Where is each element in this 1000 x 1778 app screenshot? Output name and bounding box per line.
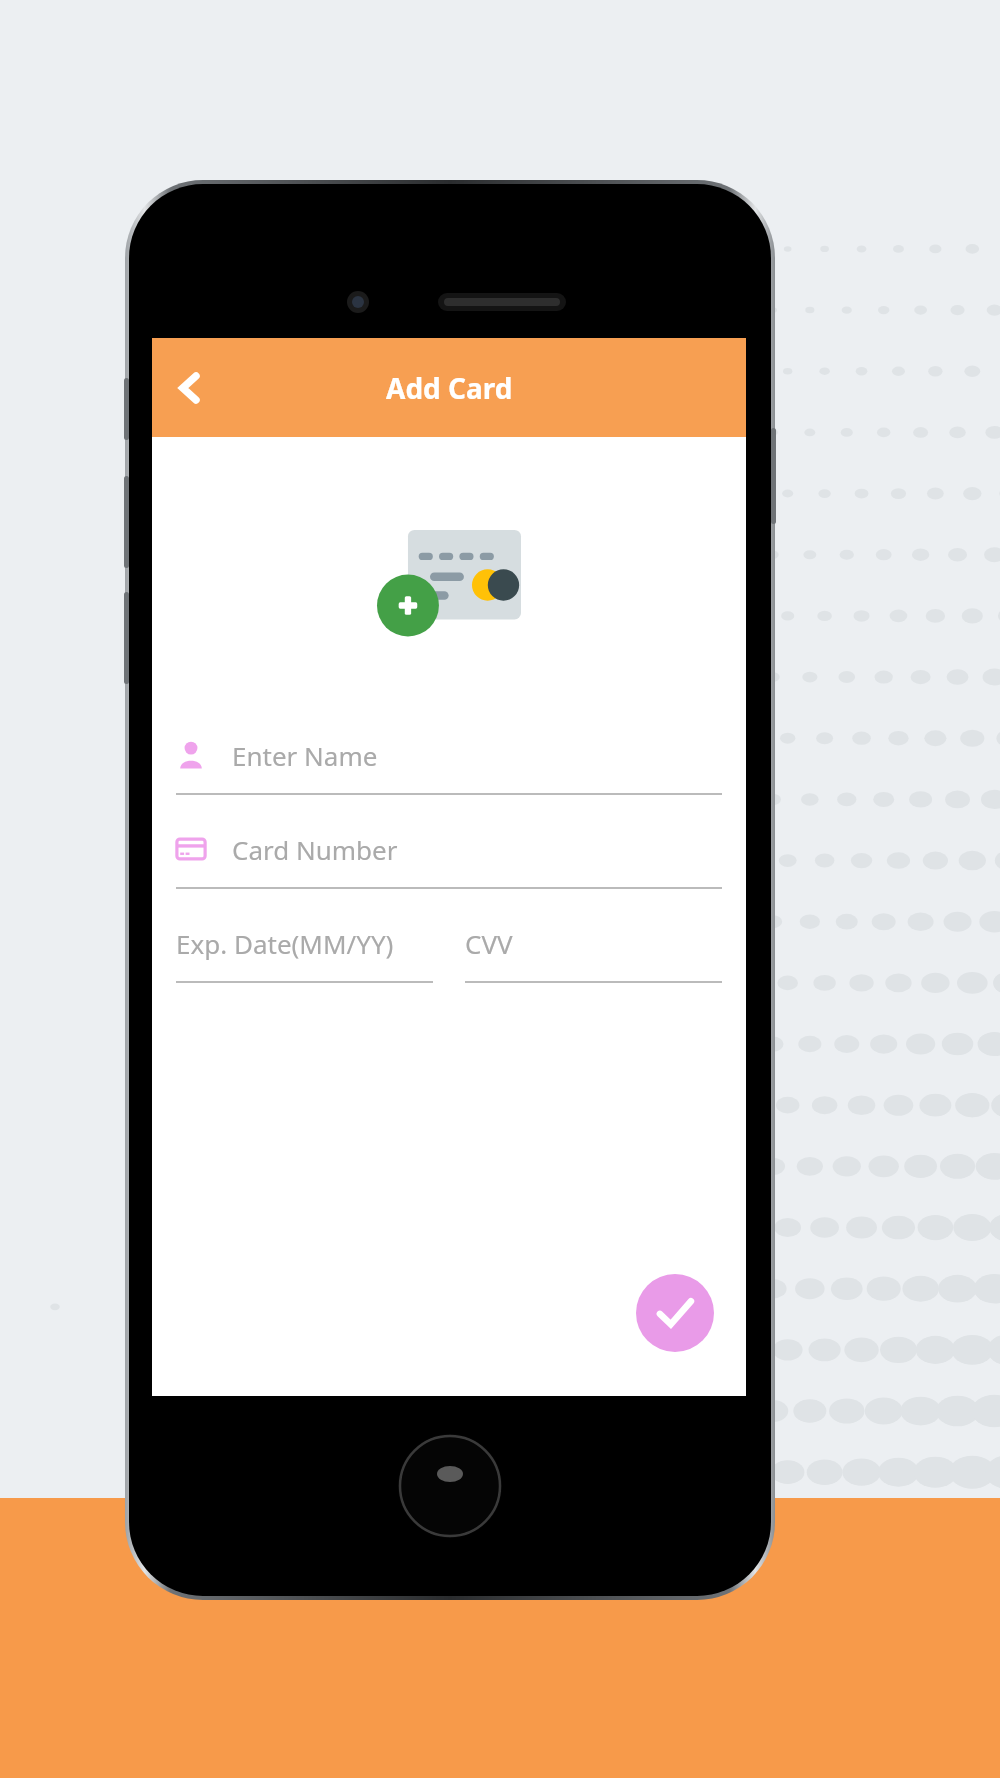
staticText: Enter Name xyxy=(232,738,378,773)
staticText: Card Number xyxy=(232,832,398,867)
button[interactable]: CVV xyxy=(465,915,722,983)
button[interactable]: Exp. Date(MM/YY) xyxy=(176,915,433,983)
button[interactable]: Enter Name xyxy=(176,727,722,795)
button[interactable]: Confirm xyxy=(636,1274,714,1352)
button[interactable]: Card Number xyxy=(176,821,722,889)
button[interactable]: Back xyxy=(158,356,222,420)
staticText: CVV xyxy=(465,926,513,961)
staticText: Add Card xyxy=(386,369,513,407)
staticText: Exp. Date(MM/YY) xyxy=(176,926,394,961)
